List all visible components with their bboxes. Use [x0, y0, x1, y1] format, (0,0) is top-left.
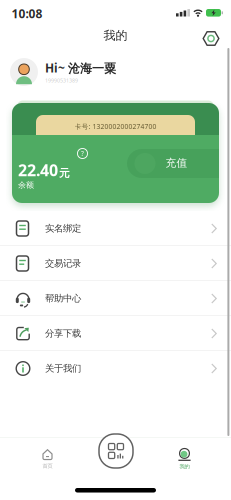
button[interactable]: 实名绑定: [0, 211, 231, 246]
button[interactable]: 关于我们: [0, 351, 231, 386]
staticText: 我的: [103, 28, 127, 43]
button[interactable]: 首页: [17, 444, 77, 474]
staticText: 分享下载: [45, 328, 81, 339]
staticText: 元: [59, 166, 70, 180]
staticText: 22.40: [18, 159, 58, 181]
staticText: 余额: [18, 180, 34, 190]
button[interactable]: 扫码: [98, 433, 134, 469]
staticText: ?: [81, 149, 84, 158]
staticText: 关于我们: [45, 363, 81, 374]
staticText: 交易记录: [45, 258, 81, 269]
staticText: 我的: [179, 463, 189, 470]
button[interactable]: 充值: [127, 149, 219, 178]
staticText: 卡号: 1320002000274700: [74, 122, 156, 131]
staticText: 帮助中心: [45, 293, 81, 304]
button[interactable]: Settings: [0, 24, 231, 48]
staticText: 充值: [165, 156, 187, 169]
staticText: 首页: [42, 463, 52, 469]
button[interactable]: 交易记录: [0, 246, 231, 281]
staticText: 10:08: [11, 5, 42, 21]
staticText: Hi~ 沧海一粟: [45, 60, 116, 76]
staticText: 实名绑定: [45, 223, 81, 234]
staticText: 19990531389: [45, 77, 78, 84]
button[interactable]: 帮助中心: [0, 281, 231, 316]
button[interactable]: 我的: [154, 444, 214, 474]
button[interactable]: 分享下载: [0, 316, 231, 351]
